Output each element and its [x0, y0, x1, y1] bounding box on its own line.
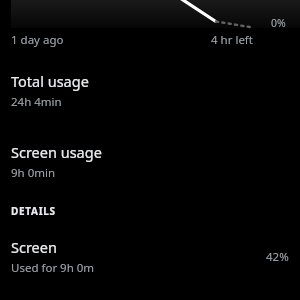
- button[interactable]: Screen usage: [0, 133, 300, 190]
- staticText: Used for 9h 0m: [11, 260, 95, 276]
- staticText: DETAILS: [11, 204, 56, 218]
- staticText: 0%: [271, 16, 286, 30]
- staticText: 4 hr left: [211, 32, 253, 48]
- staticText: Total usage: [11, 71, 89, 91]
- button[interactable]: Screen: [0, 228, 300, 285]
- button[interactable]: Total usage: [0, 62, 300, 119]
- staticText: Screen: [11, 237, 57, 257]
- staticText: 9h 0min: [11, 165, 56, 181]
- staticText: 1 day ago: [11, 32, 64, 48]
- staticText: 42%: [266, 249, 289, 265]
- staticText: 24h 4min: [11, 94, 62, 110]
- staticText: Screen usage: [11, 142, 102, 162]
